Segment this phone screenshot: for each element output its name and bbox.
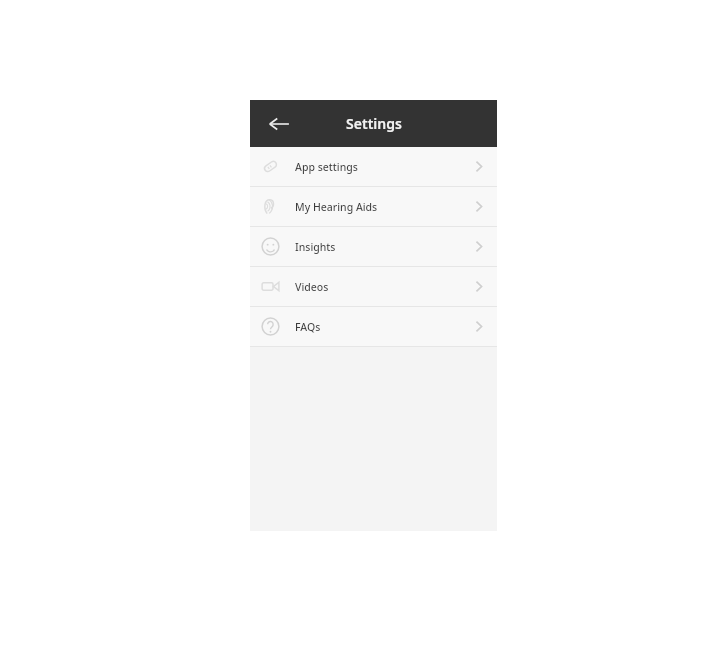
staticText: My Hearing Aids — [295, 200, 475, 214]
staticText: FAQs — [295, 320, 475, 334]
button[interactable]: My Hearing Aids — [250, 187, 497, 226]
staticText: App settings — [295, 160, 475, 174]
button[interactable]: Insights — [250, 227, 497, 266]
button[interactable]: FAQs — [250, 307, 497, 346]
staticText: Videos — [295, 280, 475, 294]
button[interactable]: Videos — [250, 267, 497, 306]
staticText: Settings — [346, 114, 402, 133]
button[interactable]: Back — [262, 107, 296, 141]
button[interactable]: App settings — [250, 147, 497, 186]
staticText: Insights — [295, 240, 475, 254]
